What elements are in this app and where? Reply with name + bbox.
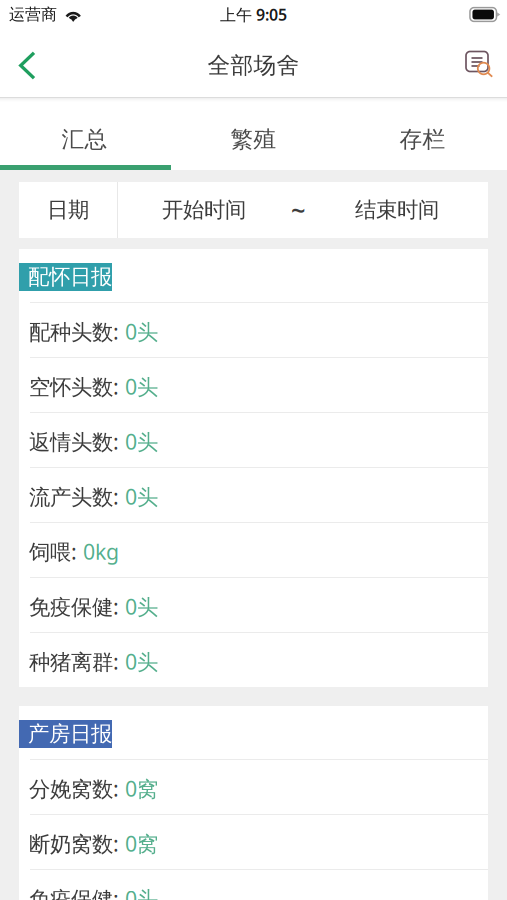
staticText: 0头 (119, 647, 158, 676)
button[interactable]: 结束时间 (306, 182, 488, 238)
staticText: 0kg (77, 537, 119, 566)
button[interactable]: 存栏 (338, 102, 507, 165)
staticText: 种猪离群: (29, 647, 119, 676)
staticText: 开始时间 (162, 197, 246, 223)
staticText: 配怀日报 (28, 264, 112, 290)
staticText: 0头 (119, 884, 158, 900)
staticText: 配种头数: (29, 317, 119, 346)
staticText: 免疫保健: (29, 884, 119, 900)
button[interactable]: 繁殖 (169, 102, 338, 165)
staticText: 流产头数: (29, 482, 119, 511)
staticText: 存栏 (399, 126, 445, 153)
staticText: 0头 (119, 592, 158, 621)
button[interactable]: 日期 (19, 182, 117, 238)
button[interactable]: 查询 (453, 34, 507, 97)
staticText: 0窝 (119, 829, 158, 858)
staticText: 运营商 (9, 5, 57, 24)
staticText: 0头 (119, 482, 158, 511)
button[interactable]: 汇总 (0, 102, 169, 165)
button[interactable]: 返回 (0, 34, 52, 97)
staticText: 全部场舍 (207, 52, 299, 79)
staticText: 断奶窝数: (29, 829, 119, 858)
staticText: 空怀头数: (29, 372, 119, 401)
staticText: 繁殖 (230, 126, 276, 153)
staticText: 返情头数: (29, 427, 119, 456)
staticText: 免疫保健: (29, 592, 119, 621)
staticText: 结束时间 (355, 197, 439, 223)
button[interactable]: 开始时间 (118, 182, 290, 238)
staticText: 0头 (119, 317, 158, 346)
staticText: 汇总 (61, 126, 107, 153)
staticText: 上午 9:05 (220, 4, 287, 25)
staticText: 分娩窝数: (29, 774, 119, 803)
staticText: 日期 (47, 197, 89, 223)
staticText: 饲喂: (29, 537, 77, 566)
staticText: 0窝 (119, 774, 158, 803)
staticText: 0头 (119, 372, 158, 401)
staticText: ~ (291, 193, 305, 227)
staticText: 0头 (119, 427, 158, 456)
staticText: 产房日报 (28, 721, 112, 747)
